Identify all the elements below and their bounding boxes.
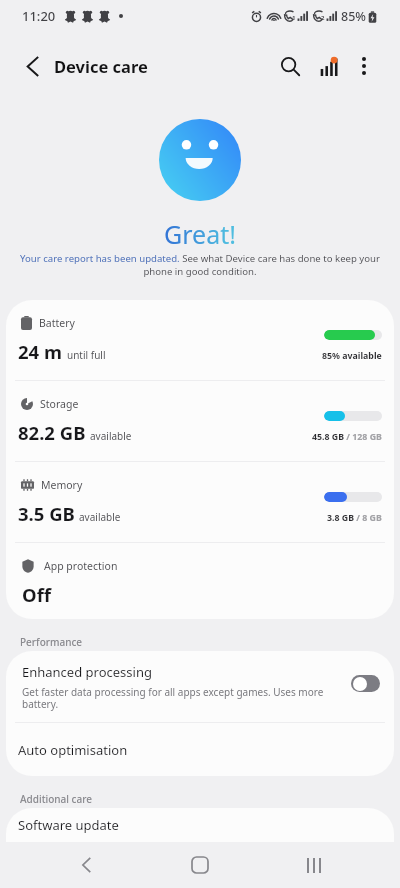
staticText: Performance [20,635,83,649]
staticText: Your care report has been updated. See w… [20,252,380,278]
staticText: available [90,429,132,443]
button[interactable]: Enhanced processing [6,651,394,722]
staticText: Memory [41,478,83,492]
staticText: Software update [18,816,119,834]
staticText: Auto optimisation [18,741,128,759]
staticText: Device care [54,55,148,77]
staticText: available [79,510,121,524]
staticText: 82.2 GB [18,420,86,445]
staticText: 1 [292,14,296,22]
button[interactable]: Home [172,842,228,888]
staticText: Get faster data processing for all apps … [22,685,343,711]
staticText: 2 [321,14,325,22]
staticText: 85% available [322,350,382,362]
staticText: App protection [44,559,118,573]
staticText: Battery [39,316,75,330]
staticText: 3.5 GB [18,501,75,526]
button[interactable]: App protection [6,543,394,619]
staticText: 45.8 GB / 128 GB [312,431,382,443]
button[interactable]: Navigate up [10,44,54,88]
staticText: Enhanced processing [22,663,152,681]
staticText: until full [67,348,106,362]
button[interactable]: Back [58,842,114,888]
button[interactable]: Memory [6,462,394,542]
staticText: 3.8 GB / 8 GB [327,512,382,524]
button[interactable]: Battery [6,300,394,380]
button[interactable]: Storage [6,381,394,461]
button[interactable]: Statistics [310,48,346,84]
staticText: Storage [40,397,79,411]
staticText: 11:20 [22,7,56,25]
button[interactable]: More options [346,48,382,84]
button[interactable]: Search [270,46,310,86]
staticText: Great! [164,217,236,251]
staticText: Off [22,582,51,607]
staticText: 24 m [18,339,63,364]
staticText: 85% [341,8,366,25]
button[interactable]: Recent apps [286,842,342,888]
button[interactable]: Software update [6,808,394,858]
staticText: Additional care [20,792,92,806]
button[interactable]: Enhanced processing toggle [351,675,380,692]
button[interactable]: Auto optimisation [6,723,394,776]
